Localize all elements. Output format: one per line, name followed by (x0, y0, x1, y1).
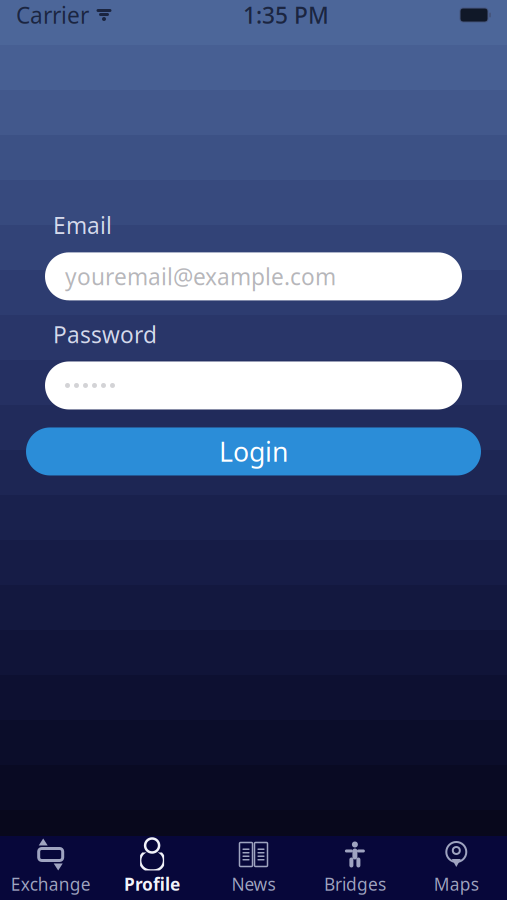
button[interactable]: News (203, 836, 304, 900)
button[interactable]: Bridges (304, 836, 406, 900)
staticText: Carrier (16, 0, 89, 30)
staticText: Exchange (11, 872, 91, 895)
staticText: youremail@example.com (65, 261, 336, 291)
button[interactable]: Exchange (0, 836, 101, 900)
staticText: Login (219, 434, 288, 469)
staticText: Maps (434, 872, 479, 895)
button[interactable]: Login (26, 427, 481, 475)
staticText: Email (53, 210, 112, 240)
button[interactable]: Profile (101, 836, 203, 900)
staticText: Profile (124, 872, 180, 895)
button[interactable]: Maps (406, 836, 507, 900)
button[interactable]: youremail@example.com (45, 252, 462, 300)
staticText: Bridges (324, 872, 386, 895)
staticText: News (231, 872, 275, 895)
staticText: 1:35 PM (243, 0, 329, 30)
staticText: Password (53, 319, 157, 349)
button[interactable] (45, 361, 462, 409)
